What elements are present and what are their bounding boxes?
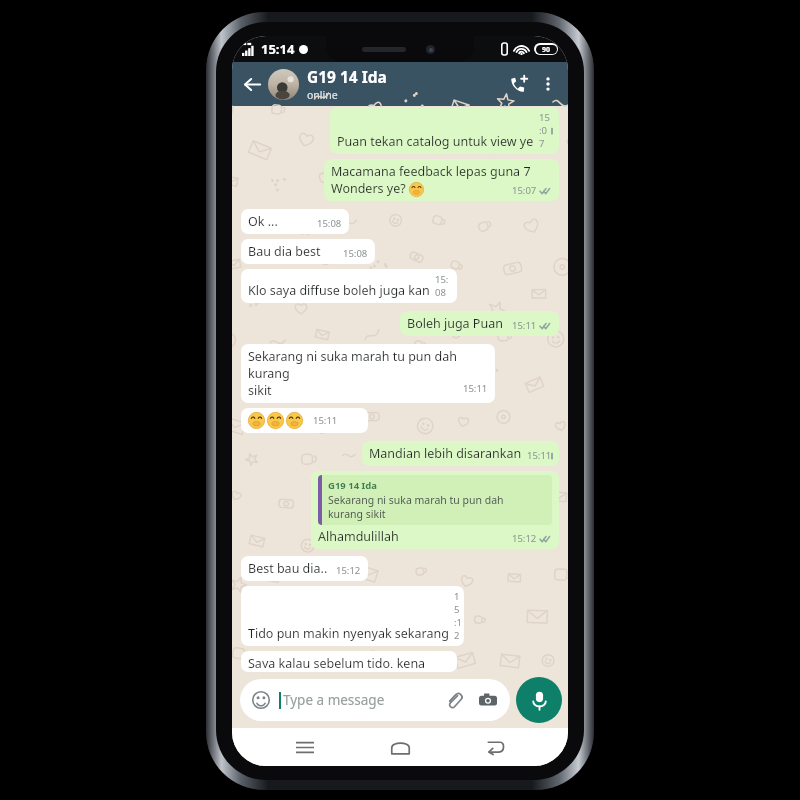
button[interactable]: Back <box>238 70 266 98</box>
staticText: sikit <box>248 382 272 399</box>
staticText: Type a message <box>283 691 385 709</box>
staticText: 15:08 <box>343 247 368 260</box>
button[interactable]: Tido pun makin nyenyak sekarang <box>241 586 464 646</box>
staticText: Klo saya diffuse boleh juga kan <box>248 282 430 299</box>
button[interactable]: More options <box>534 70 562 98</box>
staticText: 90 <box>542 45 551 54</box>
button[interactable]: Macamana feedback lepas guna 7 <box>324 159 559 201</box>
staticText: 15:07 <box>539 111 552 150</box>
staticText: Sekarang ni suka marah tu pun dah kurang <box>248 348 488 382</box>
staticText: online <box>307 88 338 102</box>
button[interactable]: Ok ... <box>241 209 349 234</box>
staticText: Wonders ye? <box>331 180 409 197</box>
staticText: Best bau dia.. <box>248 560 328 577</box>
button[interactable]: Saya kalau sebelum tido, kena mandi <box>241 651 457 672</box>
staticText: 15:11 <box>313 414 338 427</box>
button[interactable]: Boleh juga Puan <box>400 311 559 336</box>
button[interactable]: G19 14 Ida <box>307 66 502 102</box>
staticText: Boleh juga Puan <box>407 315 503 332</box>
staticText: 15:14 <box>261 40 295 58</box>
staticText: Alhamdulillah <box>318 528 399 545</box>
button[interactable]: Best bau dia.. <box>241 556 368 581</box>
staticText: 15:12 <box>512 532 537 545</box>
button[interactable]: Back <box>473 728 517 766</box>
button[interactable]: Mandian lebih disarankan <box>362 441 559 466</box>
button[interactable]: Home <box>378 728 422 766</box>
button[interactable]: Call <box>502 68 534 100</box>
staticText: G19 14 Ida <box>328 479 377 492</box>
staticText: 15:08 <box>435 273 450 299</box>
staticText: Puan tekan catalog untuk view ye <box>337 133 534 150</box>
button[interactable]: Emoji <box>240 679 510 721</box>
button[interactable]: Puan tekan catalog untuk view ye <box>330 107 559 154</box>
staticText: Sekarang ni suka marah tu pun dah <box>328 493 504 507</box>
staticText: Ok ... <box>248 213 278 230</box>
staticText: 15:07 <box>512 184 537 197</box>
staticText: 15:11 <box>463 382 488 395</box>
staticText: Saya kalau sebelum tido, kena mandi <box>248 655 450 668</box>
staticText: 15:12 <box>454 590 457 642</box>
button[interactable]: Camera <box>477 689 499 711</box>
button[interactable]: Emoji <box>251 690 271 710</box>
staticText: Bau dia best <box>248 243 321 260</box>
staticText: 15:11 <box>512 319 537 332</box>
staticText: Tido pun makin nyenyak sekarang <box>248 625 449 642</box>
staticText: Mandian lebih disarankan <box>369 445 522 462</box>
staticText: 15:08 <box>317 217 342 230</box>
button[interactable]: Attach <box>443 689 465 711</box>
button[interactable]: 15:11 <box>241 408 368 433</box>
staticText: G19 14 Ida <box>307 66 387 87</box>
button[interactable]: Klo saya diffuse boleh juga kan <box>241 269 457 303</box>
staticText: 15:11 <box>527 449 552 462</box>
button[interactable]: Bau dia best <box>241 239 375 264</box>
button[interactable]: Record voice message <box>516 677 562 723</box>
button[interactable]: G19 14 Ida <box>311 471 559 549</box>
staticText: Macamana feedback lepas guna 7 <box>331 163 531 180</box>
button[interactable]: Profile photo <box>268 69 299 100</box>
button[interactable]: Sekarang ni suka marah tu pun dah kurang <box>241 344 495 403</box>
button[interactable]: Recents <box>283 728 327 766</box>
staticText: kurang sikit <box>328 507 386 521</box>
staticText: 15:12 <box>336 564 361 577</box>
